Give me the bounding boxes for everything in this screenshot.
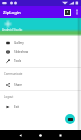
staticText: Android Studio <box>2 28 23 32</box>
button[interactable]: Share <box>0 80 81 89</box>
button[interactable]: Gallery <box>0 38 81 47</box>
button[interactable]: Tools <box>0 56 81 65</box>
staticText: Share <box>14 83 23 87</box>
staticText: Logout <box>4 95 14 99</box>
staticText: Gallery <box>14 41 24 45</box>
button[interactable]: Home <box>36 131 45 140</box>
staticText: Communicate <box>4 72 23 76</box>
button[interactable]: Slideshow <box>0 47 81 56</box>
staticText: Exit <box>14 105 20 109</box>
button[interactable]: Compose <box>65 114 75 124</box>
button[interactable]: More options <box>74 7 80 17</box>
button[interactable]: Recent apps <box>56 131 65 140</box>
button[interactable]: Exit <box>0 102 81 111</box>
staticText: Slideshow <box>14 50 29 54</box>
button[interactable]: Back <box>16 131 25 140</box>
staticText: ZipLogin <box>3 9 21 15</box>
staticText: Tools <box>14 59 22 63</box>
button[interactable]: Account <box>64 9 71 16</box>
